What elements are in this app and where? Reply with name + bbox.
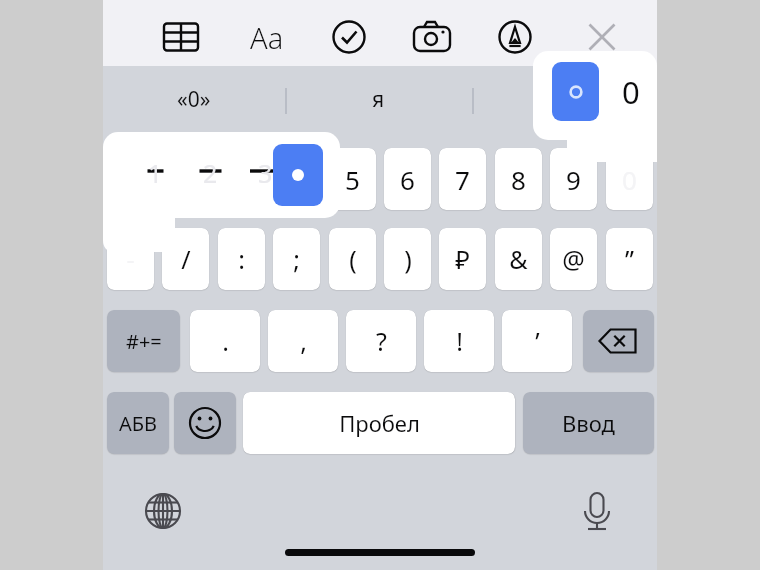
button[interactable]: Emoji [174, 392, 236, 454]
staticText: ! [456, 324, 463, 358]
staticText: 8 [511, 162, 526, 197]
button[interactable]: - [107, 228, 154, 290]
button[interactable]: . [190, 310, 260, 372]
button[interactable]: Bullet [273, 144, 323, 206]
staticText: @ [562, 242, 585, 276]
staticText: ’ [535, 324, 540, 358]
button[interactable]: Close [578, 13, 626, 61]
button[interactable]: 3 [242, 142, 289, 204]
staticText: 1 [148, 156, 163, 190]
staticText: ” [625, 242, 634, 276]
button[interactable]: ₽ [439, 228, 486, 290]
button[interactable]: 6 [384, 148, 431, 210]
staticText: 6 [400, 162, 415, 197]
button[interactable]: Aa [241, 17, 293, 57]
button[interactable]: 0 [611, 62, 651, 121]
button[interactable]: ’ [502, 310, 572, 372]
button[interactable]: 5 [329, 148, 376, 210]
button[interactable]: «0» [103, 66, 285, 133]
button[interactable]: Dictation [574, 485, 620, 531]
button[interactable]: 9 [550, 148, 597, 210]
button[interactable]: ( [329, 228, 376, 290]
button[interactable]: 1 [107, 148, 154, 210]
button[interactable]: Ввод [523, 392, 654, 454]
button[interactable]: / [162, 228, 209, 290]
staticText: ₽ [455, 242, 470, 276]
button[interactable]: Checklist [325, 13, 373, 61]
staticText: 5 [345, 162, 360, 197]
button[interactable]: 2 [162, 148, 209, 210]
button[interactable]: 2 [187, 142, 234, 204]
button[interactable]: @ [550, 228, 597, 290]
staticText: #+= [126, 328, 162, 355]
button[interactable]: 3 [218, 148, 265, 210]
button[interactable]: Degree sign [552, 62, 599, 121]
staticText: , [300, 324, 307, 358]
staticText: 3 [258, 156, 273, 190]
staticText: Пробел [339, 408, 420, 438]
staticText: Ввод [562, 408, 615, 438]
staticText: & [509, 242, 528, 276]
button[interactable]: ? [346, 310, 416, 372]
staticText: ( [349, 242, 357, 276]
button[interactable]: Camera [408, 13, 456, 61]
button[interactable]: ; [273, 228, 320, 290]
staticText: 7 [455, 162, 470, 197]
button[interactable]: ” [606, 228, 653, 290]
staticText: : [238, 242, 245, 276]
button[interactable]: & [495, 228, 542, 290]
staticText: я [372, 85, 385, 114]
staticText: «0» [177, 85, 211, 114]
button[interactable]: 7 [439, 148, 486, 210]
button[interactable]: ) [384, 228, 431, 290]
button[interactable]: : [218, 228, 265, 290]
button[interactable]: Markup pen [491, 13, 539, 61]
button[interactable]: Table [157, 13, 205, 61]
staticText: / [181, 242, 191, 276]
button[interactable]: я [287, 66, 470, 133]
button[interactable] [474, 66, 657, 133]
button[interactable]: #+= [107, 310, 180, 372]
staticText: 2 [203, 156, 218, 190]
staticText: ? [376, 324, 387, 358]
button[interactable]: Пробел [243, 392, 515, 454]
staticText: 4 [289, 162, 304, 197]
button[interactable]: Backspace [583, 310, 654, 372]
staticText: 0 [622, 71, 640, 113]
staticText: ; [293, 242, 300, 276]
button[interactable]: АБВ [107, 392, 169, 454]
button[interactable]: 8 [495, 148, 542, 210]
staticText: АБВ [119, 410, 158, 437]
staticText: Aa [250, 18, 284, 57]
button[interactable]: Switch keyboard language [140, 488, 186, 534]
button[interactable]: 0 [606, 148, 653, 210]
button[interactable]: 4 [273, 148, 320, 210]
button[interactable]: 1 [132, 142, 179, 204]
staticText: 9 [566, 162, 581, 197]
button[interactable]: ! [424, 310, 494, 372]
staticText: 0 [622, 162, 637, 197]
staticText: ) [404, 242, 412, 276]
button[interactable]: , [268, 310, 338, 372]
staticText: . [222, 324, 229, 358]
button[interactable]: Text format [243, 13, 291, 61]
